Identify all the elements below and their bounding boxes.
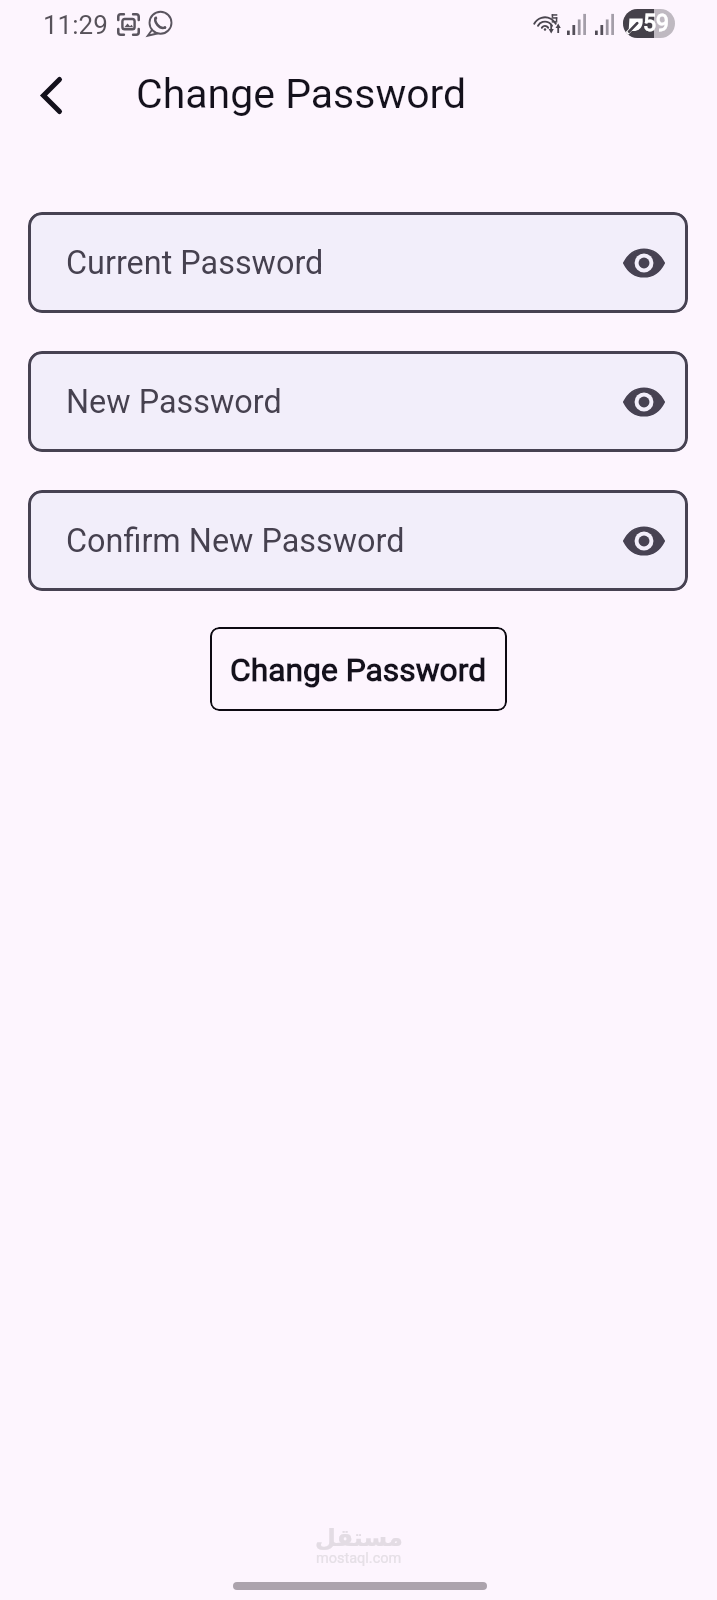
button[interactable]: Show password	[613, 510, 675, 572]
staticText: Confirm New Password	[66, 522, 405, 560]
button[interactable]: Back	[17, 61, 85, 129]
staticText: Current Password	[66, 244, 324, 282]
staticText: Change Password	[230, 651, 487, 688]
button[interactable]: Change Password	[210, 627, 507, 711]
button[interactable]: Current Password	[28, 212, 688, 313]
staticText: New Password	[66, 383, 282, 421]
button[interactable]: New Password	[28, 351, 688, 452]
staticText: 11:29	[43, 10, 108, 40]
staticText: مستقل	[315, 1524, 403, 1552]
button[interactable]: Show password	[613, 232, 675, 294]
staticText: mostaql.com	[316, 1550, 402, 1567]
button[interactable]: Show password	[613, 371, 675, 433]
staticText: Change Password	[136, 70, 467, 118]
staticText: 59	[643, 10, 669, 37]
button[interactable]: Confirm New Password	[28, 490, 688, 591]
